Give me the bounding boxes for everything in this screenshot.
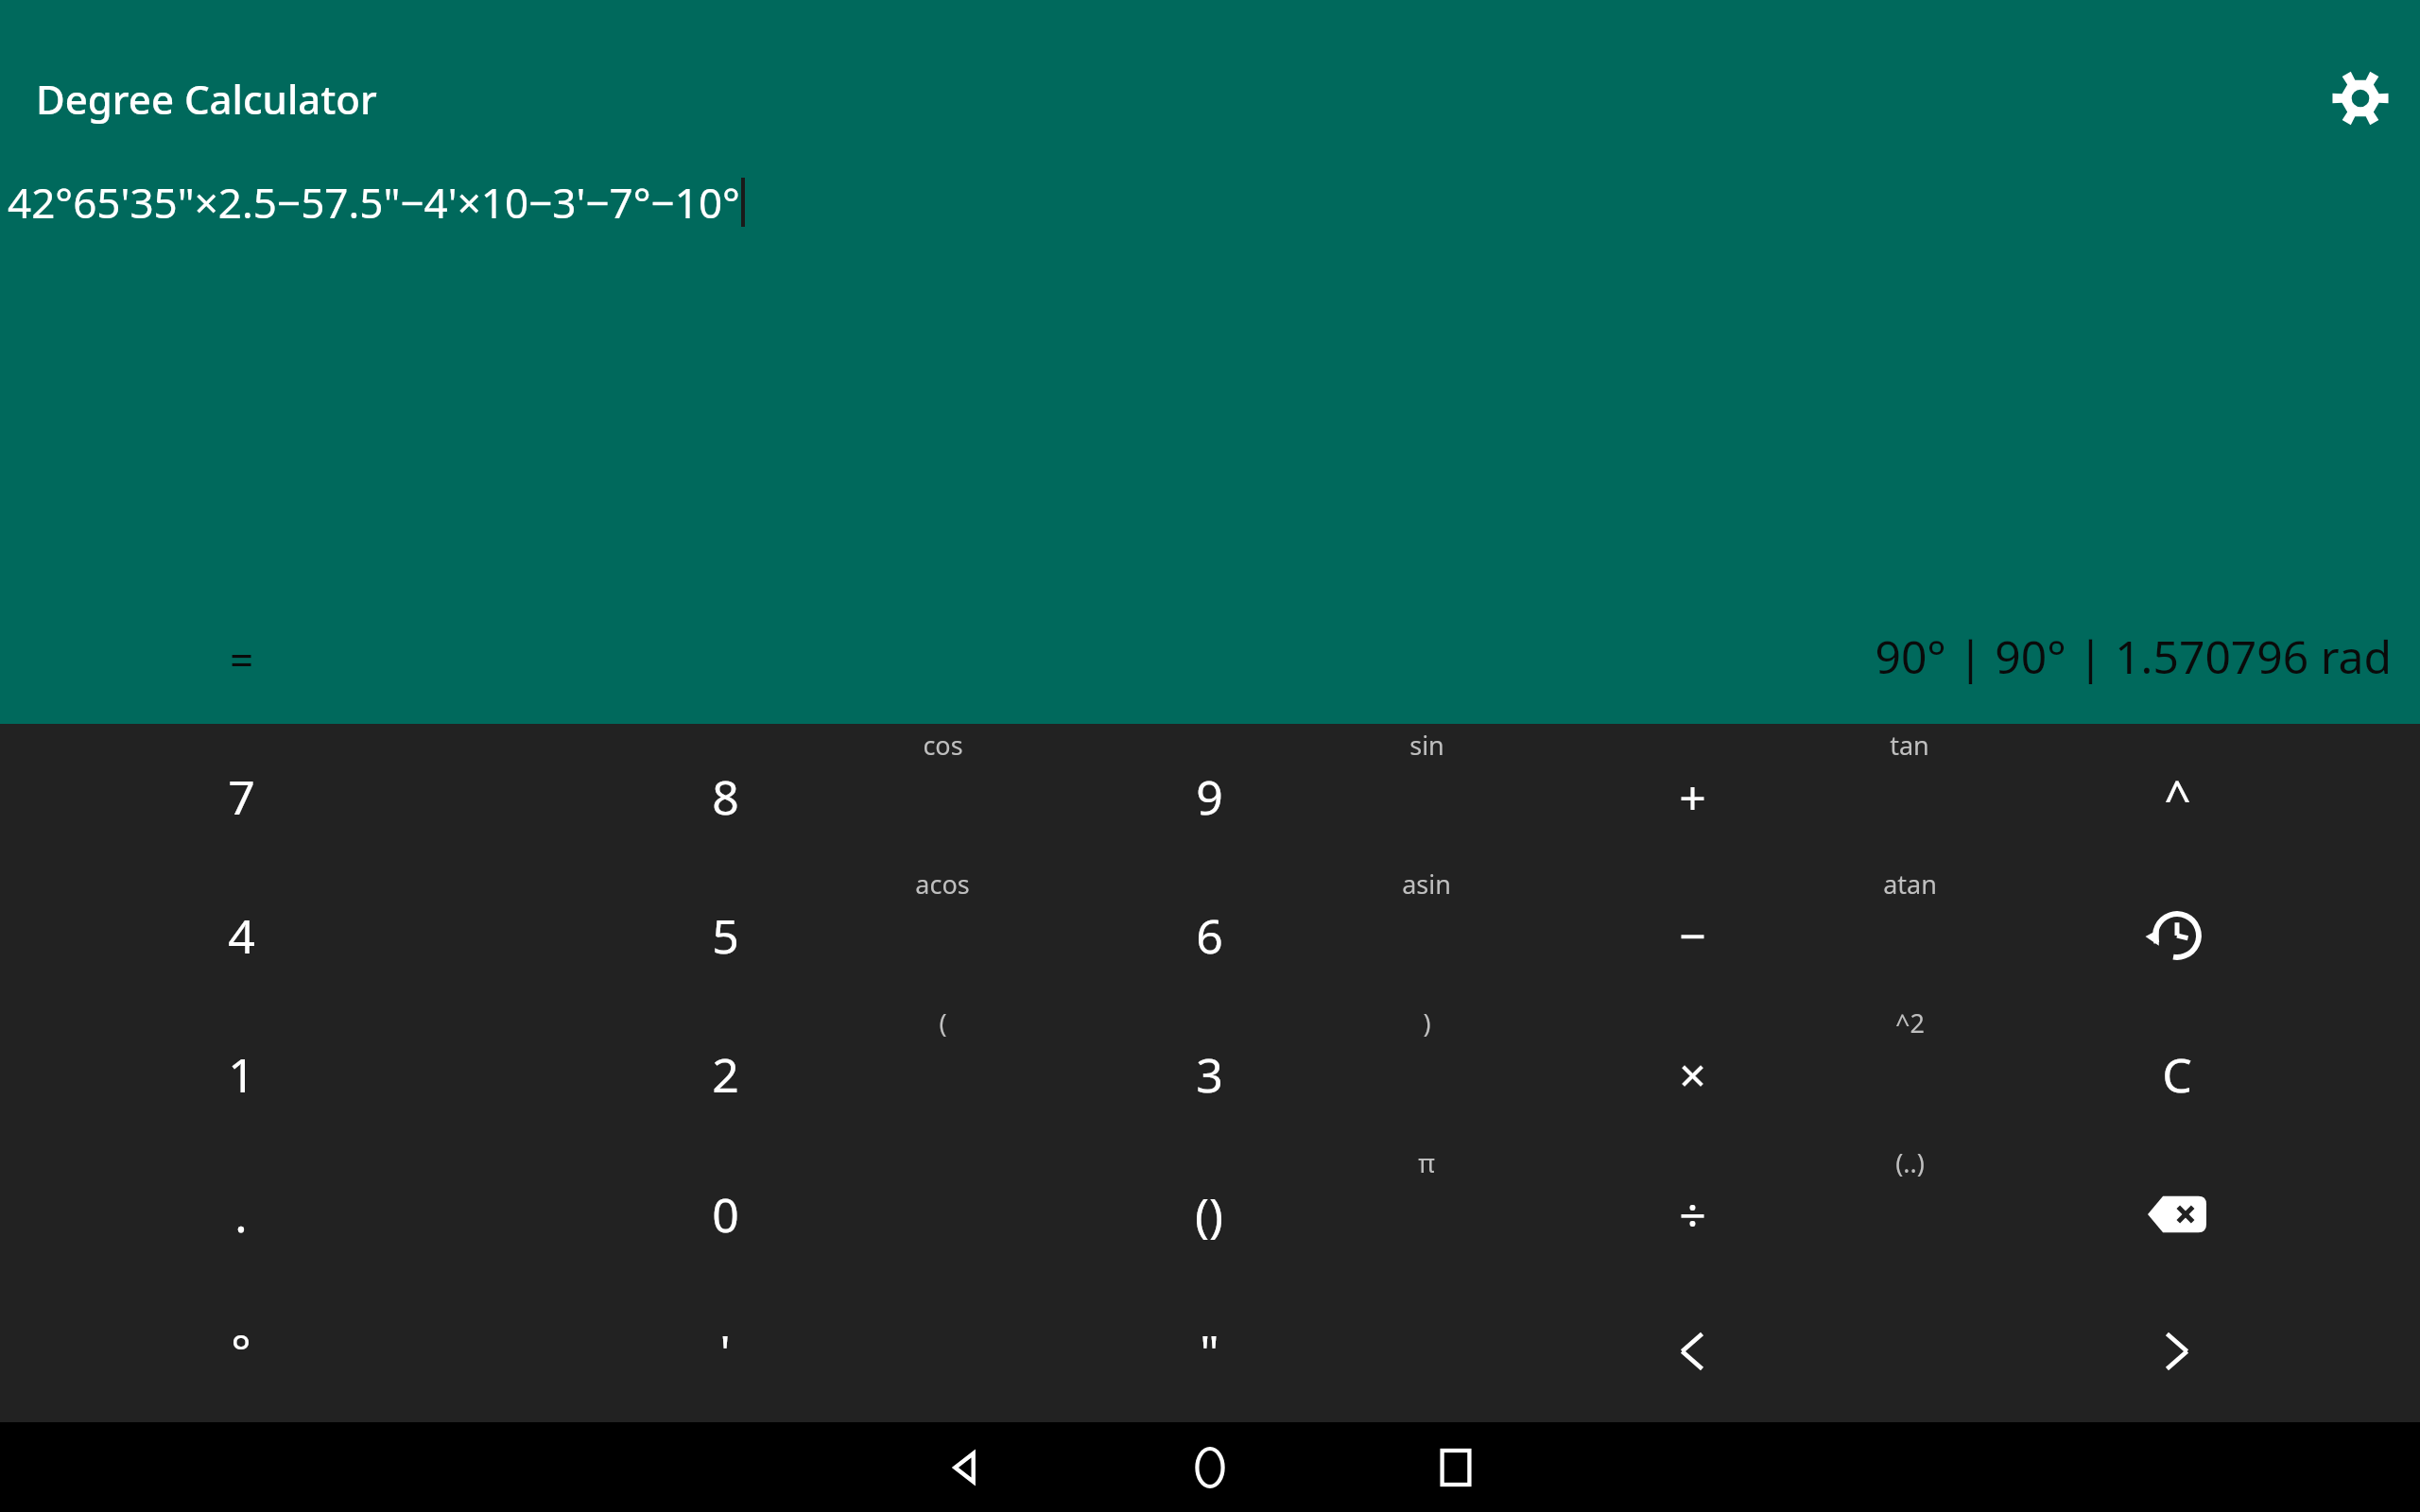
button[interactable]: 42°65'35"×2.5−57.5"−4'×10−3'−7°−10° [8, 174, 744, 231]
staticText: " [1200, 1319, 1219, 1383]
staticText: 3 [1196, 1042, 1223, 1107]
button[interactable] [1452, 864, 1936, 1004]
button[interactable] [484, 864, 968, 1004]
staticText: ' [719, 1319, 731, 1383]
button[interactable] [968, 1143, 1452, 1282]
staticText: tan [1890, 728, 1929, 763]
button[interactable]: Settings [2304, 42, 2417, 155]
staticText: = [230, 631, 254, 688]
staticText: π [1418, 1145, 1435, 1180]
button[interactable]: Home [1144, 1422, 1276, 1512]
button[interactable] [968, 1282, 1452, 1422]
staticText: 7 [228, 765, 255, 829]
staticText: 42°65'35"×2.5−57.5"−4'×10−3'−7°−10° [8, 174, 740, 231]
button[interactable] [1452, 1143, 1936, 1282]
staticText: C [2162, 1042, 2192, 1107]
button[interactable] [484, 724, 968, 864]
button[interactable] [0, 724, 484, 864]
staticText: acos [915, 867, 970, 902]
staticText: 90° | 90° | 1.570796 rad [1875, 626, 2392, 687]
staticText: + [1679, 765, 1706, 829]
staticText: 6 [1196, 903, 1223, 968]
button[interactable] [0, 1143, 484, 1282]
button[interactable] [484, 1143, 968, 1282]
button[interactable] [0, 864, 484, 1004]
button[interactable]: History [1936, 864, 2420, 1004]
staticText: ° [231, 1319, 251, 1383]
staticText: 9 [1196, 765, 1223, 829]
button[interactable]: Backspace [1936, 1143, 2420, 1282]
staticText: (..) [1895, 1145, 1925, 1180]
staticText: 1 [228, 1042, 255, 1107]
staticText: × [1679, 1042, 1706, 1107]
staticText: ( [939, 1005, 947, 1040]
staticText: atan [1883, 867, 1937, 902]
staticText: sin [1409, 728, 1444, 763]
staticText: () [1195, 1182, 1223, 1246]
staticText: 4 [228, 903, 255, 968]
staticText: cos [923, 728, 963, 763]
staticText: 5 [712, 903, 739, 968]
staticText: 8 [712, 765, 739, 829]
staticText: asin [1402, 867, 1451, 902]
button[interactable] [968, 724, 1452, 864]
staticText: Degree Calculator [36, 72, 377, 126]
button[interactable] [968, 864, 1452, 1004]
staticText: ) [1423, 1005, 1431, 1040]
button[interactable]: Recent apps [1390, 1422, 1522, 1512]
button[interactable]: Back [898, 1422, 1030, 1512]
staticText: 2 [712, 1042, 739, 1107]
staticText: . [234, 1182, 248, 1246]
button[interactable] [0, 1282, 484, 1422]
button[interactable] [968, 1004, 1452, 1143]
button[interactable] [1452, 724, 1936, 864]
button[interactable] [1452, 1004, 1936, 1143]
button[interactable] [1936, 1004, 2420, 1143]
staticText: − [1679, 903, 1706, 968]
button[interactable] [1936, 724, 2420, 864]
button[interactable] [484, 1004, 968, 1143]
staticText: 0 [712, 1182, 739, 1246]
button[interactable]: Move cursor right [1936, 1282, 2420, 1422]
button[interactable]: Move cursor left [1452, 1282, 1936, 1422]
staticText: ^ [2164, 765, 2191, 829]
button[interactable] [0, 1004, 484, 1143]
staticText: ^2 [1895, 1005, 1925, 1040]
button[interactable] [484, 1282, 968, 1422]
staticText: ÷ [1679, 1182, 1706, 1246]
